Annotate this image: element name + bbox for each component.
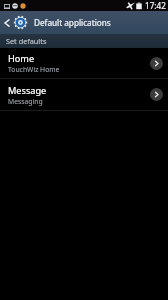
staticText: 17:42 (145, 0, 166, 11)
button[interactable]: Home (0, 48, 168, 78)
button[interactable]: Open Home (150, 57, 163, 70)
staticText: Message (8, 84, 47, 97)
staticText: Home (8, 52, 35, 65)
staticText: TouchWiz Home (8, 65, 60, 74)
staticText: Messaging (8, 97, 43, 106)
button[interactable]: Back (0, 11, 14, 34)
staticText: Default applications (34, 17, 111, 28)
button[interactable]: Open Message (150, 88, 163, 101)
button[interactable]: Message (0, 79, 168, 110)
staticText: Set defaults (6, 36, 47, 46)
